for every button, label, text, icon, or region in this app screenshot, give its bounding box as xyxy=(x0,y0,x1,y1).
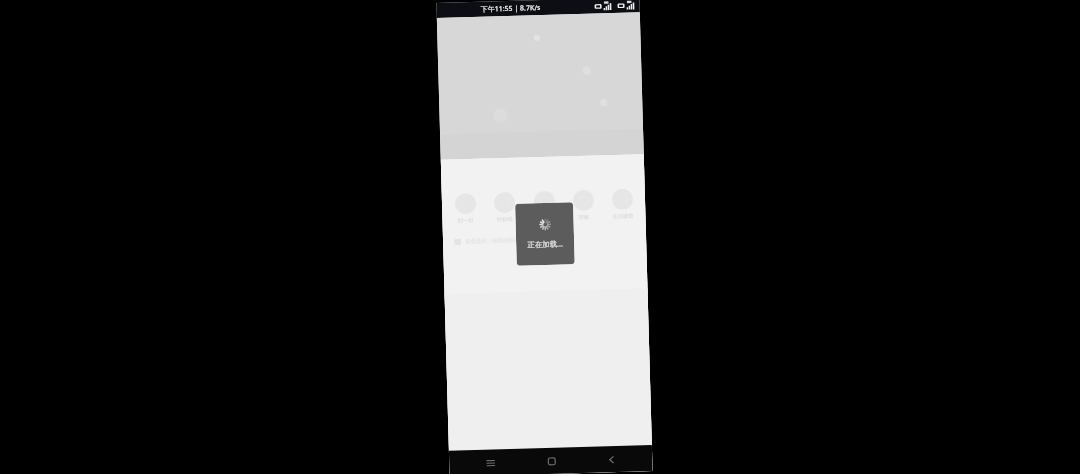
staticText: 下午11:55 | 8.7K/s xyxy=(480,3,541,15)
button[interactable]: 扫一扫 xyxy=(448,192,483,226)
staticText: 生活缴费 xyxy=(612,212,634,220)
button[interactable]: 收款 xyxy=(527,189,562,223)
staticText: 转账 xyxy=(578,214,590,221)
button[interactable]: Back xyxy=(591,446,632,473)
button[interactable]: 生活缴费 xyxy=(605,187,640,221)
staticText: 付款码 xyxy=(496,216,513,223)
button[interactable]: 转账 xyxy=(566,188,601,222)
button[interactable]: 安全提示：请勿向陌生人转账汇款，谨防诈骗 xyxy=(454,233,635,246)
staticText: 安全提示：请勿向陌生人转账汇款，谨防诈骗 xyxy=(465,235,573,245)
button[interactable]: Home xyxy=(531,447,572,474)
staticText: 收款 xyxy=(539,215,551,222)
staticText: 正在加载... xyxy=(527,238,563,249)
button[interactable]: Recent apps xyxy=(470,449,511,474)
staticText: 扫一扫 xyxy=(457,217,474,224)
button[interactable]: 付款码 xyxy=(487,191,522,224)
